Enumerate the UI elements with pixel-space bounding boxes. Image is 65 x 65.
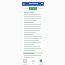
button[interactable]: Code image xyxy=(23,59,27,63)
button[interactable] xyxy=(29,7,37,10)
button[interactable]: Back xyxy=(22,2,44,5)
button[interactable] xyxy=(23,52,43,54)
button[interactable]: Logo xyxy=(39,59,43,63)
other: Back xyxy=(23,3,25,5)
